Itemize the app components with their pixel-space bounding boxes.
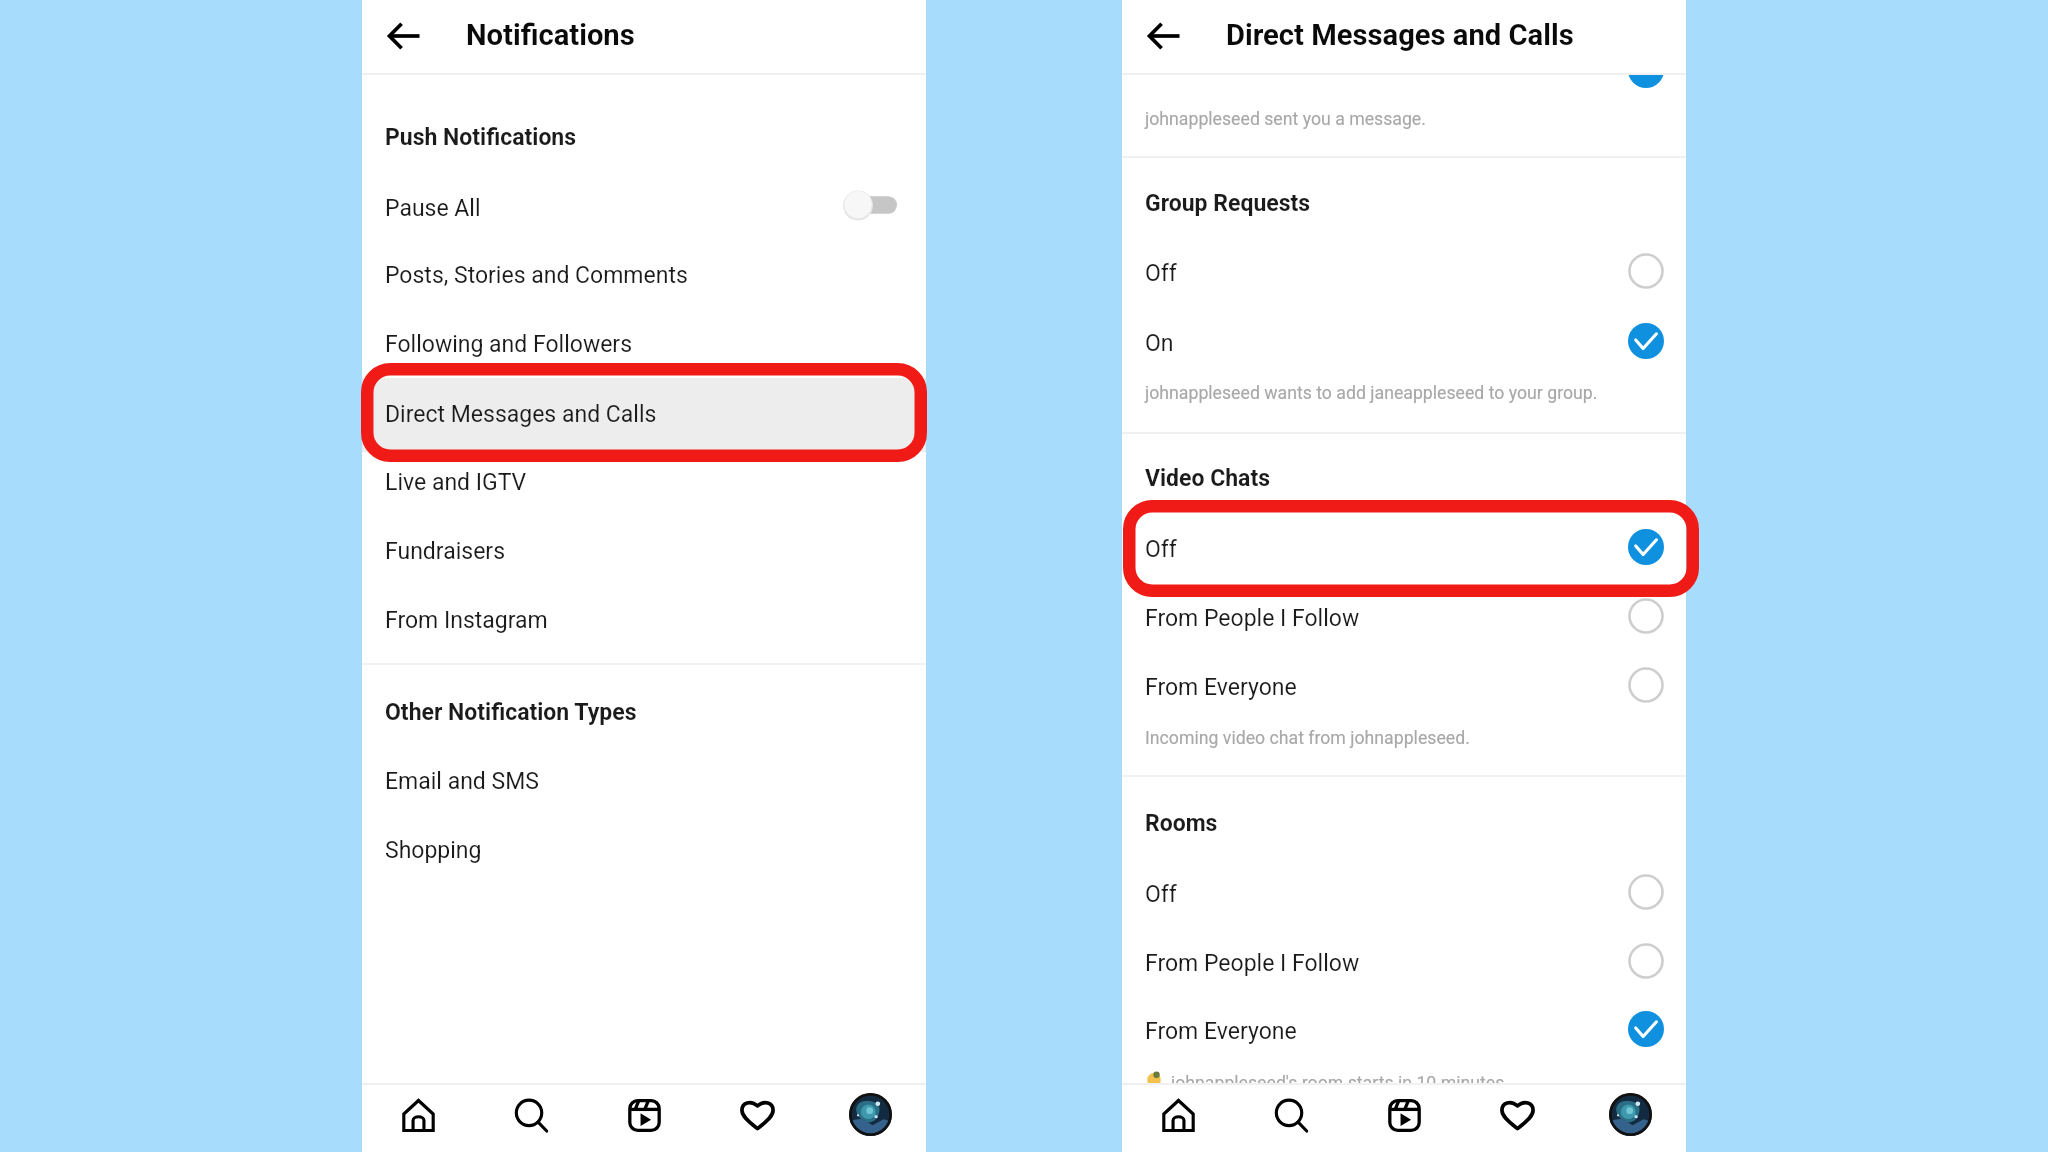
button[interactable]: Pause All: [362, 175, 926, 231]
staticText: johnappleseed wants to add janeappleseed…: [1145, 383, 1598, 404]
staticText: Off: [1145, 881, 1177, 908]
button[interactable]: Activity: [721, 1085, 793, 1152]
staticText: Pause All: [385, 195, 481, 222]
button[interactable]: Profile: [834, 1085, 906, 1152]
staticText: Rooms: [1145, 810, 1218, 837]
button[interactable]: Profile: [1594, 1085, 1666, 1152]
button[interactable]: From People I Follow: [1122, 930, 1686, 986]
button[interactable]: On: [1122, 310, 1686, 366]
button[interactable]: Live and IGTV: [362, 455, 926, 511]
button[interactable]: Back: [376, 8, 432, 64]
other: Pause All off: [843, 190, 897, 220]
button[interactable]: Search: [495, 1085, 567, 1152]
staticText: Off: [1145, 260, 1177, 287]
button[interactable]: From Instagram: [362, 593, 926, 649]
staticText: From Instagram: [385, 607, 548, 634]
staticText: Posts, Stories and Comments: [385, 262, 688, 289]
button[interactable]: Direct Messages and Calls: [362, 378, 926, 452]
button[interactable]: Off: [1122, 861, 1686, 917]
other: Not selected: [1628, 943, 1664, 979]
staticText: Notifications: [466, 18, 635, 52]
staticText: Direct Messages and Calls: [1226, 18, 1574, 52]
staticText: Other Notification Types: [385, 699, 637, 726]
button[interactable]: Off: [1122, 240, 1686, 296]
button[interactable]: Reels: [608, 1085, 680, 1152]
staticText: From Everyone: [1145, 674, 1297, 701]
button[interactable]: Off: [1122, 516, 1686, 572]
button[interactable]: Home: [382, 1085, 454, 1152]
staticText: Group Requests: [1145, 190, 1311, 217]
staticText: Push Notifications: [385, 124, 577, 151]
other: Selected: [1628, 529, 1664, 565]
button[interactable]: Following and Followers: [362, 317, 926, 373]
staticText: Following and Followers: [385, 331, 633, 358]
other: Not selected: [1628, 667, 1664, 703]
other: Not selected: [1628, 598, 1664, 634]
button[interactable]: From People I Follow: [1122, 585, 1686, 641]
button[interactable]: From Everyone: [1122, 998, 1686, 1054]
other: Not selected: [1628, 253, 1664, 289]
staticText: From Everyone: [1145, 1018, 1297, 1045]
button[interactable]: Activity: [1481, 1085, 1553, 1152]
staticText: Email and SMS: [385, 768, 539, 795]
button[interactable]: Email and SMS: [362, 754, 926, 810]
button[interactable]: Search: [1255, 1085, 1327, 1152]
staticText: Video Chats: [1145, 465, 1271, 492]
staticText: Live and IGTV: [385, 469, 527, 496]
staticText: On: [1145, 330, 1174, 357]
button[interactable]: Reels: [1368, 1085, 1440, 1152]
button[interactable]: From Everyone: [1122, 654, 1686, 710]
other: Selected: [1628, 1011, 1664, 1047]
staticText: Off: [1145, 536, 1177, 563]
staticText: From People I Follow: [1145, 605, 1360, 632]
button[interactable]: Fundraisers: [362, 524, 926, 580]
staticText: Incoming video chat from johnappleseed.: [1145, 728, 1470, 749]
button[interactable]: Back: [1136, 8, 1192, 64]
staticText: From People I Follow: [1145, 950, 1360, 977]
staticText: Fundraisers: [385, 538, 505, 565]
staticText: Direct Messages and Calls: [385, 401, 657, 428]
staticText: johnappleseed's room starts in 10 minute…: [1171, 1073, 1509, 1085]
button[interactable]: Shopping: [362, 823, 926, 879]
button[interactable]: Posts, Stories and Comments: [362, 248, 926, 304]
other: Selected: [1628, 323, 1664, 359]
other: Not selected: [1628, 874, 1664, 910]
staticText: johnappleseed sent you a message.: [1145, 109, 1426, 130]
button[interactable]: Home: [1142, 1085, 1214, 1152]
staticText: Shopping: [385, 837, 482, 864]
